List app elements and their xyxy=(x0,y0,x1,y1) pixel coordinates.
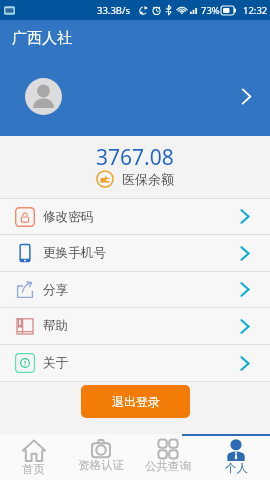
button[interactable]: 修改密码 xyxy=(0,199,270,234)
staticText: 12:32 xyxy=(243,4,268,17)
staticText: 医保余额 xyxy=(122,171,174,187)
staticText: 3767.08 xyxy=(96,143,174,172)
button[interactable]: 关于 xyxy=(0,345,270,381)
staticText: 资格认证 xyxy=(78,458,124,472)
button[interactable]: 首页 xyxy=(0,434,67,480)
staticText: 广西人社 xyxy=(12,29,72,48)
button[interactable]: 分享 xyxy=(0,272,270,307)
staticText: 更换手机号 xyxy=(43,245,106,261)
button[interactable] xyxy=(0,56,270,136)
staticText: 73% xyxy=(201,4,220,17)
staticText: 帮助 xyxy=(43,318,69,334)
button[interactable]: 公共查询 xyxy=(134,434,202,480)
staticText: 33.3B/s xyxy=(97,4,131,17)
staticText: 修改密码 xyxy=(43,209,94,225)
staticText: 分享 xyxy=(43,282,69,298)
button[interactable]: 更换手机号 xyxy=(0,235,270,271)
button[interactable]: 个人 xyxy=(202,434,270,480)
button[interactable]: 退出登录 xyxy=(81,385,190,418)
button[interactable]: 资格认证 xyxy=(67,434,134,480)
staticText: 公共查询 xyxy=(145,459,191,473)
button[interactable]: 帮助 xyxy=(0,308,270,344)
staticText: 关于 xyxy=(43,355,69,371)
staticText: 退出登录 xyxy=(112,394,160,409)
staticText: 首页 xyxy=(22,462,45,476)
staticText: 个人 xyxy=(225,461,248,475)
